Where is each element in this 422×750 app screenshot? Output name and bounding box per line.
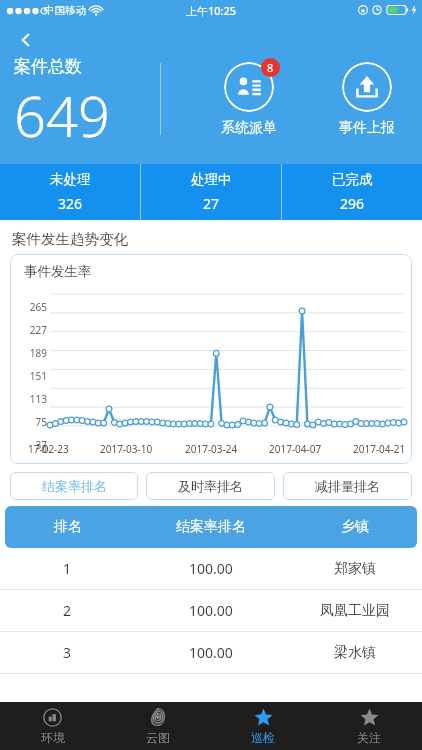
button[interactable]: 事件上报 xyxy=(320,62,414,137)
staticText: 上午10:25 xyxy=(186,3,237,18)
button[interactable]: 结案率排名 xyxy=(10,472,138,500)
staticText: 3 xyxy=(63,643,72,662)
button[interactable]: 2 xyxy=(0,590,422,632)
staticText: 及时率排名 xyxy=(178,478,243,494)
button[interactable]: 巡检 xyxy=(210,702,316,750)
button[interactable]: 云图 xyxy=(105,702,210,750)
staticText: 事件上报 xyxy=(339,119,395,137)
staticText: 2017-03-10 xyxy=(100,442,153,456)
button[interactable]: 减排量排名 xyxy=(283,472,412,500)
button[interactable]: Back xyxy=(8,22,44,58)
button[interactable]: 3 xyxy=(0,632,422,674)
staticText: 巡检 xyxy=(251,730,275,745)
staticText: 17-02-23 xyxy=(28,442,69,456)
staticText: 案件总数 xyxy=(14,56,82,77)
staticText: 处理中 xyxy=(191,171,232,188)
staticText: 37 xyxy=(10,438,47,452)
staticText: 296 xyxy=(340,194,365,213)
staticText: 郑家镇 xyxy=(334,560,376,578)
staticText: 189 xyxy=(10,346,47,360)
button[interactable]: 及时率排名 xyxy=(146,472,275,500)
staticText: 75 xyxy=(10,415,47,429)
staticText: 减排量排名 xyxy=(315,478,380,494)
staticText: 案件发生趋势变化 xyxy=(12,230,128,248)
staticText: 关注 xyxy=(357,730,381,745)
button[interactable]: 已完成 xyxy=(282,164,422,220)
button[interactable]: 关注 xyxy=(316,702,422,750)
button[interactable]: 环境 xyxy=(0,702,105,750)
staticText: 100.00 xyxy=(189,601,233,620)
staticText: 排名 xyxy=(54,518,82,536)
button[interactable]: 处理中 xyxy=(141,164,281,220)
staticText: 结案率排名 xyxy=(176,518,246,536)
staticText: 1 xyxy=(63,559,72,578)
staticText: 227 xyxy=(10,323,47,337)
button[interactable]: 未处理 xyxy=(0,164,140,220)
staticText: 265 xyxy=(10,300,47,314)
staticText: 系统派单 xyxy=(221,119,277,137)
staticText: 未处理 xyxy=(50,171,91,188)
staticText: 326 xyxy=(58,194,83,213)
staticText: 2 xyxy=(63,601,72,620)
staticText: 结案率排名 xyxy=(42,478,107,494)
staticText: 凤凰工业园 xyxy=(320,602,390,620)
staticText: 环境 xyxy=(41,730,65,745)
staticText: 2017-04-07 xyxy=(269,442,322,456)
staticText: 乡镇 xyxy=(341,518,369,536)
staticText: 100.00 xyxy=(189,559,233,578)
staticText: 2017-03-24 xyxy=(185,442,238,456)
staticText: 151 xyxy=(10,369,47,383)
staticText: 27 xyxy=(203,194,220,213)
staticText: 梁水镇 xyxy=(334,644,376,662)
button[interactable]: 1 xyxy=(0,548,422,590)
staticText: 2017-04-21 xyxy=(353,442,406,456)
staticText: 已完成 xyxy=(332,171,373,188)
staticText: 8 xyxy=(267,60,274,75)
staticText: 事件发生率 xyxy=(24,263,92,280)
staticText: 中国移动 xyxy=(44,4,86,17)
staticText: 100.00 xyxy=(189,643,233,662)
staticText: 云图 xyxy=(146,730,170,745)
staticText: 649 xyxy=(14,77,110,153)
button[interactable]: 8 xyxy=(202,62,296,137)
staticText: 113 xyxy=(10,392,47,406)
staticText: 0 xyxy=(10,442,47,455)
